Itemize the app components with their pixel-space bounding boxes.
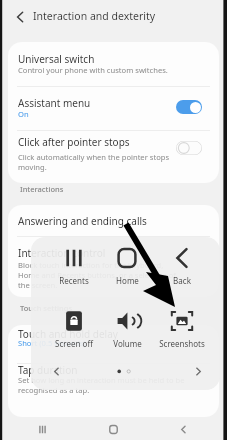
staticText: Screenshots: [159, 338, 205, 349]
button[interactable]: Next page: [187, 360, 209, 382]
button[interactable]: Home: [99, 243, 155, 289]
staticText: Recents: [59, 275, 89, 286]
button[interactable]: [8, 45, 219, 75]
button[interactable]: Home: [102, 422, 124, 436]
button[interactable]: [8, 363, 219, 415]
button[interactable]: Volume: [99, 306, 155, 352]
staticText: Click after pointer stops: [18, 135, 130, 149]
staticText: Control your phone with custom switches.: [18, 65, 168, 75]
staticText: Interaction control: [18, 246, 106, 260]
staticText: Click automatically when the pointer sto…: [18, 152, 170, 172]
button[interactable]: Switch off: [176, 141, 202, 155]
staticText: Screen off: [55, 338, 93, 349]
staticText: Interaction and dexterity: [33, 9, 156, 23]
button[interactable]: Previous page: [45, 360, 67, 382]
button[interactable]: Recents: [31, 422, 53, 436]
staticText: Interactions: [20, 184, 64, 194]
button[interactable]: Switch on: [176, 100, 202, 114]
staticText: Home: [116, 275, 139, 286]
button[interactable]: [8, 325, 219, 360]
button[interactable]: [8, 230, 219, 296]
button[interactable]: [8, 205, 219, 227]
button[interactable]: Recents: [46, 243, 102, 289]
staticText: Set how long an interaction must be held…: [18, 375, 185, 395]
button[interactable]: Screenshots: [154, 306, 210, 352]
button[interactable]: Back: [172, 422, 194, 436]
staticText: Touch and hold delay: [18, 327, 118, 341]
button[interactable]: Screen off: [46, 306, 102, 352]
staticText: Answering and ending calls: [18, 214, 147, 228]
staticText: Block touch interaction for the keyboard…: [18, 260, 176, 290]
button[interactable]: [8, 88, 219, 120]
staticText: Universal switch: [18, 52, 95, 66]
staticText: Back: [173, 275, 191, 286]
button[interactable]: Back: [154, 243, 210, 289]
staticText: On: [18, 109, 29, 119]
button[interactable]: Navigate up: [6, 3, 33, 30]
staticText: Touch settings: [20, 303, 73, 313]
staticText: Volume: [113, 338, 142, 349]
staticText: Short (0.5 seconds): [18, 338, 86, 348]
staticText: Assistant menu: [18, 96, 91, 110]
staticText: Tap duration: [18, 363, 78, 377]
button[interactable]: [8, 131, 219, 181]
